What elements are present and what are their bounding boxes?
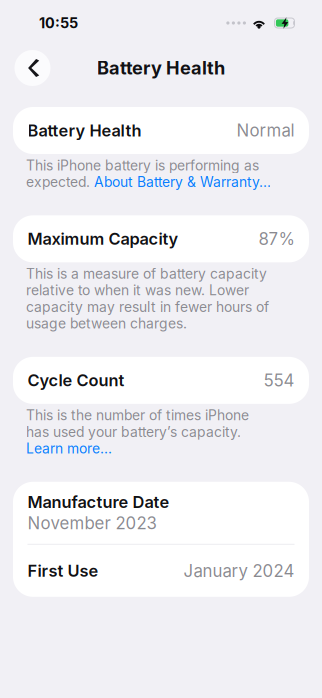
staticText: First Use <box>27 561 98 581</box>
staticText: 10:55 <box>39 14 78 32</box>
staticText: Battery Health <box>97 57 225 79</box>
staticText: 87% <box>258 229 294 249</box>
staticText: 554 <box>263 370 294 390</box>
staticText: This is a measure of battery capacity re… <box>26 265 269 332</box>
staticText: Maximum Capacity <box>27 229 178 249</box>
staticText: Manufacture Date <box>27 492 169 512</box>
staticText: This iPhone battery is performing as exp… <box>26 157 271 190</box>
staticText: January 2024 <box>183 561 294 581</box>
staticText: This is the number of times iPhone has u… <box>26 407 249 457</box>
button[interactable]: Back <box>14 50 50 86</box>
button[interactable]: Maximum Capacity <box>0 215 322 262</box>
button[interactable]: Battery Health <box>0 107 322 154</box>
button[interactable]: Cycle Count <box>0 357 322 404</box>
staticText: Battery Health <box>27 121 141 140</box>
staticText: November 2023 <box>27 513 156 533</box>
staticText: Cycle Count <box>27 370 124 390</box>
staticText: Normal <box>236 120 294 141</box>
